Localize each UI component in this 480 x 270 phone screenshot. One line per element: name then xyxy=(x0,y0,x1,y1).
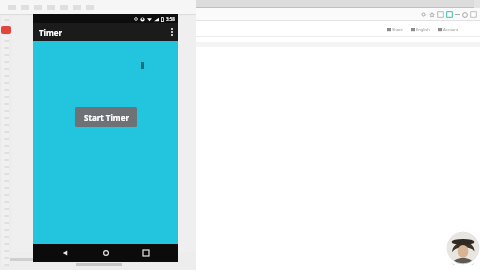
button[interactable]: Menu xyxy=(470,11,477,18)
button[interactable]: Presenter camera xyxy=(444,229,480,267)
staticText: 3:58 xyxy=(166,16,175,22)
button[interactable]: Extension two xyxy=(446,11,453,18)
staticText: Account xyxy=(443,27,459,32)
button[interactable]: Marker xyxy=(1,26,11,34)
staticText: English xyxy=(416,27,430,32)
staticText: Share xyxy=(392,27,403,32)
button[interactable]: Extension one xyxy=(437,11,444,18)
button[interactable]: More options xyxy=(166,23,178,41)
button[interactable]: Start Timer xyxy=(75,107,137,127)
button[interactable]: English xyxy=(410,27,431,32)
button[interactable]: More tools xyxy=(455,12,460,17)
button[interactable]: Bookmark xyxy=(429,12,435,18)
button[interactable]: Recent apps xyxy=(137,244,155,262)
button[interactable]: Back xyxy=(56,244,74,262)
button[interactable]: Search xyxy=(421,12,427,18)
button[interactable]: Share xyxy=(386,27,404,32)
button[interactable]: Account xyxy=(437,27,460,32)
staticText: Timer xyxy=(39,27,63,38)
button[interactable]: Home xyxy=(97,244,115,262)
staticText: Start Timer xyxy=(84,112,129,123)
button[interactable]: Profile xyxy=(462,12,468,18)
